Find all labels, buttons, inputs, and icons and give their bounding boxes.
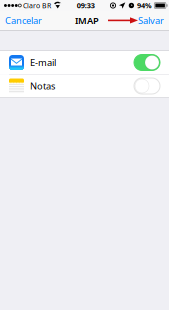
staticText: E-mail (30, 56, 56, 69)
staticText: 94% (137, 0, 152, 10)
button[interactable]: Salvar (132, 11, 169, 30)
staticText: Cancelar (5, 14, 42, 27)
staticText: Notas (30, 80, 55, 92)
button[interactable]: Cancelar (0, 11, 48, 30)
staticText: 09:33 (77, 0, 95, 10)
button[interactable]: E-mail (0, 51, 169, 74)
staticText: IMAP (75, 14, 99, 27)
staticText: Claro BR (23, 1, 51, 10)
staticText: Salvar (138, 14, 164, 27)
button[interactable]: Notas (0, 74, 169, 97)
